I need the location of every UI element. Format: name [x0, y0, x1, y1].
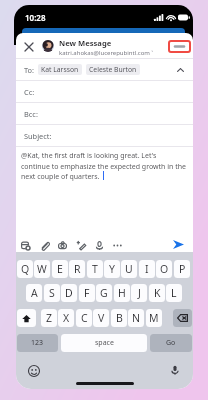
staticText: W	[37, 262, 47, 276]
staticText: Z	[46, 311, 53, 325]
button[interactable]: A	[26, 284, 42, 302]
staticText: V	[98, 311, 105, 325]
staticText: Y	[109, 262, 115, 276]
staticText: Cc:	[24, 87, 35, 97]
staticText: B	[116, 311, 123, 325]
button[interactable]: Cc:	[16, 81, 193, 102]
staticText: To:	[24, 65, 35, 75]
staticText: 123	[31, 338, 44, 348]
button[interactable]: M	[146, 309, 162, 327]
button[interactable]: S	[44, 284, 60, 302]
button[interactable]: R	[69, 260, 85, 278]
button[interactable]: Dictation	[168, 363, 182, 377]
staticText: 10:28	[25, 12, 46, 23]
button[interactable]: Q	[17, 260, 33, 278]
button[interactable]: O	[156, 260, 172, 278]
staticText: J	[138, 286, 141, 300]
button[interactable]: F	[79, 284, 95, 302]
staticText: D	[65, 286, 73, 300]
button[interactable]: Emoji	[27, 364, 41, 378]
staticText: N	[132, 311, 140, 325]
button[interactable]: L	[166, 284, 182, 302]
button[interactable]: Close	[21, 39, 36, 54]
button[interactable]: B	[111, 309, 127, 327]
button[interactable]: N	[128, 309, 144, 327]
button[interactable]: Insert image	[17, 237, 33, 253]
button[interactable]: H	[114, 284, 130, 302]
button[interactable]: To:	[16, 59, 193, 80]
staticText: New Message	[59, 38, 112, 48]
button[interactable]: Attach file	[36, 237, 52, 253]
button[interactable]: I	[139, 260, 155, 278]
button[interactable]: Go	[150, 334, 192, 352]
staticText: katri.ahokas@lucerepubintl.com ˅	[59, 49, 154, 57]
button[interactable]: 123	[17, 334, 58, 352]
button[interactable]: More options	[168, 40, 191, 53]
button[interactable]: More	[109, 237, 125, 253]
staticText: O	[160, 262, 169, 276]
button[interactable]: V	[93, 309, 109, 327]
staticText: H	[118, 286, 126, 300]
button[interactable]: D	[61, 284, 77, 302]
staticText: Q	[21, 262, 30, 276]
staticText: P	[179, 262, 186, 276]
staticText: R	[74, 262, 81, 276]
staticText: U	[125, 262, 133, 276]
button[interactable]: Backspace	[173, 309, 192, 327]
button[interactable]: W	[34, 260, 50, 278]
button[interactable]: Shift	[17, 309, 36, 327]
button[interactable]: K	[149, 284, 165, 302]
button[interactable]: Edit with AI	[73, 237, 89, 253]
button[interactable]: space	[61, 334, 147, 352]
staticText: @Kat, the first draft is looking great. …	[21, 151, 193, 181]
staticText: K	[154, 286, 161, 300]
button[interactable]: Send	[169, 235, 187, 253]
staticText: A	[31, 286, 38, 300]
button[interactable]: Camera	[54, 237, 70, 253]
staticText: M	[149, 311, 159, 325]
staticText: I	[145, 262, 149, 276]
button[interactable]: X	[58, 309, 74, 327]
button[interactable]: E	[52, 260, 68, 278]
button[interactable]: G	[96, 284, 112, 302]
button[interactable]: U	[121, 260, 137, 278]
staticText: F	[84, 286, 90, 300]
button[interactable]: T	[87, 260, 103, 278]
button[interactable]: Subject:	[16, 125, 193, 146]
staticText: Kat Larsson	[41, 65, 79, 74]
button[interactable]: C	[76, 309, 92, 327]
button[interactable]: J	[131, 284, 147, 302]
staticText: E	[57, 262, 63, 276]
staticText: space	[95, 338, 114, 348]
staticText: Bcc:	[24, 109, 38, 119]
staticText: L	[171, 286, 177, 300]
staticText: X	[63, 311, 70, 325]
staticText: S	[49, 286, 55, 300]
staticText: G	[100, 286, 108, 300]
button[interactable]: Microphone	[91, 237, 107, 253]
staticText: T	[92, 262, 98, 276]
button[interactable]: Bcc:	[16, 103, 193, 124]
staticText: Subject:	[24, 131, 52, 141]
button[interactable]: Z	[41, 309, 57, 327]
button[interactable]: Y	[104, 260, 120, 278]
staticText: C	[81, 311, 88, 325]
staticText: Go	[166, 338, 176, 348]
button[interactable]: P	[174, 260, 190, 278]
staticText: Celeste Burton	[89, 65, 137, 74]
